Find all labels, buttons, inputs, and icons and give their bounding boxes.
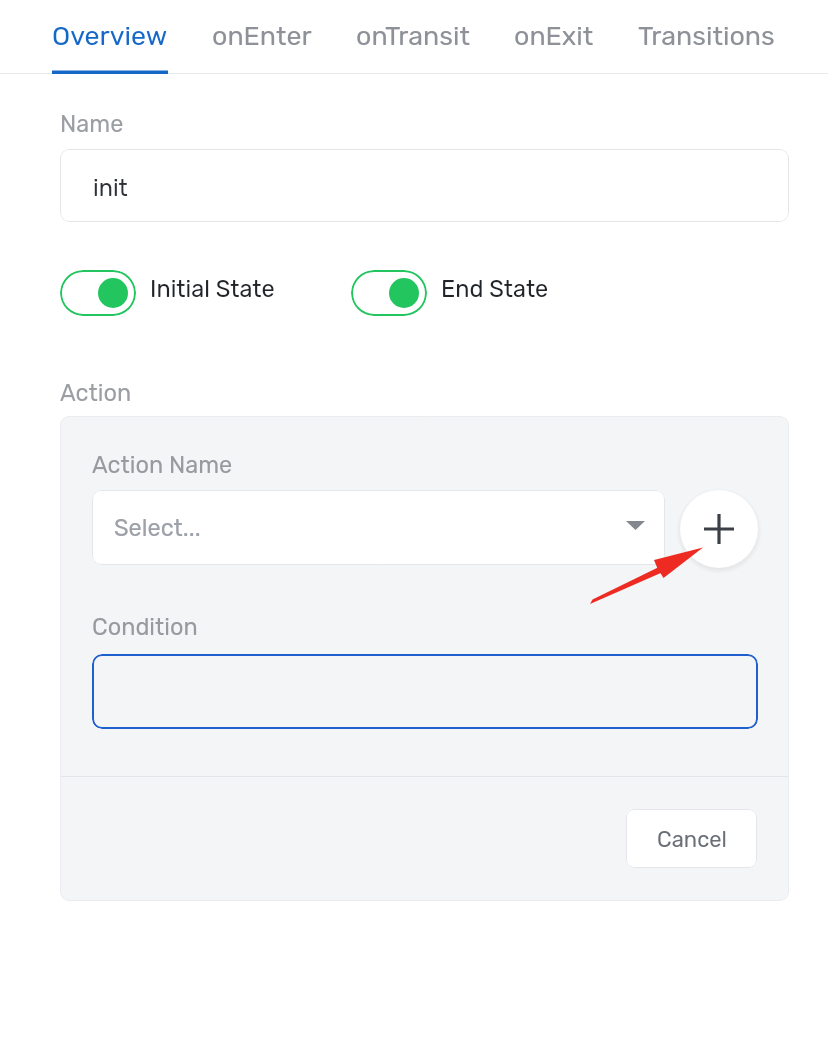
staticText: onEnter xyxy=(212,20,312,52)
button[interactable]: init xyxy=(60,149,789,222)
button[interactable]: Select... xyxy=(92,490,665,565)
button[interactable]: Cancel xyxy=(626,809,757,868)
button[interactable]: Initial State xyxy=(60,270,136,316)
staticText: init xyxy=(93,174,128,202)
staticText: Name xyxy=(60,110,124,138)
button[interactable]: Overview xyxy=(30,0,190,74)
button[interactable]: onEnter xyxy=(190,0,334,74)
button[interactable]: onTransit xyxy=(334,0,492,74)
button[interactable] xyxy=(92,654,758,729)
button[interactable]: Add action xyxy=(680,490,758,568)
staticText: Select... xyxy=(114,514,201,542)
staticText: Action Name xyxy=(92,451,233,479)
button[interactable]: End State xyxy=(441,275,549,303)
staticText: Overview xyxy=(52,20,168,52)
staticText: onExit xyxy=(514,20,594,52)
staticText: Action xyxy=(60,379,132,407)
button[interactable]: End State xyxy=(351,270,427,316)
button[interactable]: onExit xyxy=(492,0,616,74)
staticText: Transitions xyxy=(638,20,775,52)
button[interactable]: Transitions xyxy=(616,0,797,74)
staticText: Condition xyxy=(92,613,198,641)
staticText: onTransit xyxy=(356,20,470,52)
button[interactable]: Initial State xyxy=(150,275,275,303)
staticText: Cancel xyxy=(657,826,727,852)
